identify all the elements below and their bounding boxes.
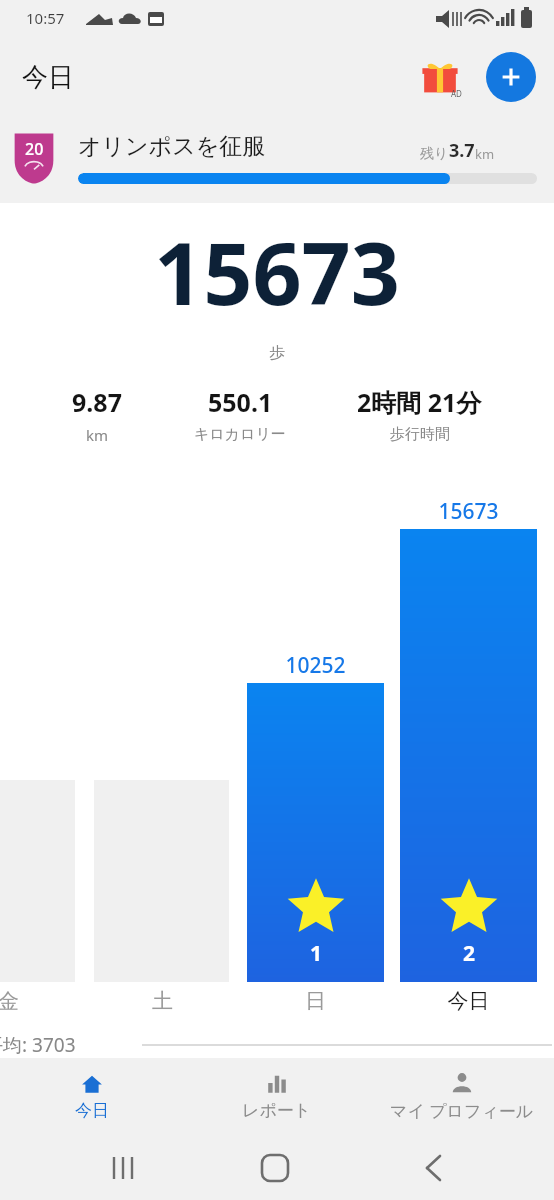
staticText: 土 [94,988,231,1014]
staticText: 今日 [22,61,74,94]
staticText: 15673 [0,213,554,330]
staticText: km [86,425,109,445]
staticText: 歩行時間 [390,425,450,444]
staticText: 平均: 3703 [0,1032,76,1058]
button[interactable]: 20 [0,118,554,203]
button[interactable]: Add [486,52,536,102]
staticText: 550.1 [208,385,273,419]
staticText: km [475,145,495,163]
staticText: 今日 [75,1100,109,1121]
staticText: 日 [247,988,384,1014]
staticText: 今日 [400,988,537,1014]
staticText: 1 [310,939,323,968]
button[interactable]: レポート [184,1058,369,1136]
staticText: 金 [0,988,77,1014]
button[interactable]: 1 [247,683,384,982]
staticText: オリンポスを征服 [78,132,266,161]
staticText: 10252 [247,651,384,680]
staticText: AD [451,88,462,99]
staticText: レポート [242,1100,312,1121]
staticText: 10:57 [26,8,65,28]
staticText: 歩 [0,343,554,363]
staticText: 残り [420,145,449,163]
staticText: 2 [463,939,476,968]
button[interactable]: 今日 [0,1058,184,1136]
button[interactable]: Rewards ad [418,55,462,99]
button[interactable]: マイ プロフィール [369,1058,554,1136]
staticText: キロカロリー [194,425,286,444]
staticText: 9.87 [72,385,122,419]
staticText: 2時間 21分 [357,385,482,419]
staticText: 15673 [400,497,537,526]
button[interactable]: 2 [400,529,537,982]
staticText: 20 [25,138,44,160]
staticText: 3.7 [449,138,475,163]
staticText: マイ プロフィール [390,1099,534,1122]
